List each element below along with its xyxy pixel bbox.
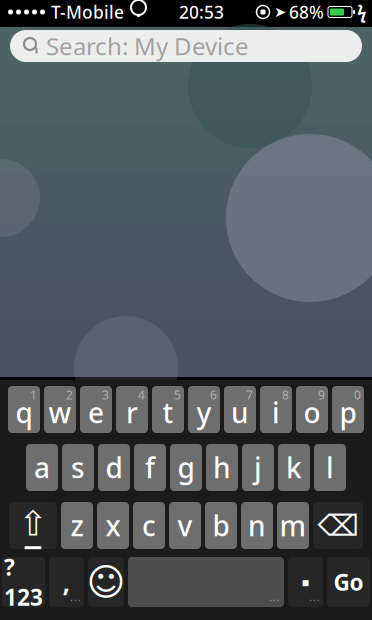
button[interactable]: x xyxy=(97,502,129,549)
staticText: ⋯ xyxy=(70,594,81,606)
staticText: , xyxy=(62,564,70,600)
staticText: a xyxy=(34,449,50,486)
button[interactable]: d xyxy=(98,444,130,491)
staticText: ▪ xyxy=(301,575,309,589)
button[interactable]: 3 xyxy=(80,386,112,433)
button[interactable]: Backspace xyxy=(313,502,363,549)
button[interactable]: Search: My Device xyxy=(10,30,362,62)
staticText: ⋯ xyxy=(309,594,320,606)
button[interactable]: j xyxy=(242,444,274,491)
button[interactable]: 2 xyxy=(44,386,76,433)
button[interactable]: v xyxy=(169,502,201,549)
staticText: k xyxy=(286,449,302,486)
staticText: o xyxy=(303,394,320,431)
button[interactable]: a xyxy=(26,444,58,491)
staticText: 5 xyxy=(174,387,181,403)
button[interactable]: m xyxy=(277,502,309,549)
button[interactable]: g xyxy=(170,444,202,491)
button[interactable]: Numbers and symbols xyxy=(2,557,45,607)
button[interactable]: 9 xyxy=(296,386,328,433)
staticText: ⌫ xyxy=(317,509,358,542)
button[interactable]: Comma xyxy=(49,557,84,607)
staticText: ?123 xyxy=(4,552,43,612)
staticText: ☺ xyxy=(86,561,125,603)
staticText: s xyxy=(71,449,85,486)
staticText: l xyxy=(326,449,334,486)
staticText: 1 xyxy=(30,387,37,403)
button[interactable]: 6 xyxy=(188,386,220,433)
staticText: 6 xyxy=(210,387,217,403)
staticText: Go xyxy=(333,567,363,597)
staticText: 7 xyxy=(246,387,253,403)
button[interactable]: 8 xyxy=(260,386,292,433)
button[interactable]: h xyxy=(206,444,238,491)
staticText: g xyxy=(177,449,194,486)
staticText: ϟ xyxy=(357,0,367,23)
staticText: 9 xyxy=(318,387,325,403)
staticText: c xyxy=(142,507,156,544)
staticText: 2 xyxy=(66,387,73,403)
button[interactable]: Emoji xyxy=(88,557,124,607)
staticText: v xyxy=(177,507,192,544)
staticText: 8 xyxy=(282,387,289,403)
button[interactable]: s xyxy=(62,444,94,491)
staticText: ⇧ xyxy=(18,504,47,543)
staticText: n xyxy=(248,507,266,544)
button[interactable]: l xyxy=(314,444,346,491)
staticText: ⋯ xyxy=(269,594,280,606)
staticText: i xyxy=(272,394,280,431)
button[interactable]: 7 xyxy=(224,386,256,433)
staticText: w xyxy=(48,394,71,431)
staticText: 3 xyxy=(102,387,109,403)
staticText: j xyxy=(254,449,262,486)
staticText: h xyxy=(213,449,231,486)
staticText: u xyxy=(231,394,249,431)
staticText: y xyxy=(196,394,211,431)
button[interactable]: Period xyxy=(288,557,323,607)
staticText: f xyxy=(145,449,155,486)
staticText: q xyxy=(15,394,32,431)
staticText: p xyxy=(339,394,356,431)
staticText: z xyxy=(70,507,83,544)
staticText: 4 xyxy=(138,387,145,403)
button[interactable]: n xyxy=(241,502,273,549)
staticText: d xyxy=(105,449,122,486)
button[interactable]: 5 xyxy=(152,386,184,433)
button[interactable]: b xyxy=(205,502,237,549)
staticText: 68% xyxy=(289,0,324,23)
button[interactable]: 1 xyxy=(8,386,40,433)
staticText: ➤ xyxy=(274,4,286,20)
button[interactable]: k xyxy=(278,444,310,491)
button[interactable]: 0 xyxy=(332,386,364,433)
staticText: Search: My Device xyxy=(46,30,249,62)
button[interactable]: Shift xyxy=(9,502,57,549)
staticText: 0 xyxy=(354,387,361,403)
staticText: r xyxy=(126,394,138,431)
button[interactable]: 4 xyxy=(116,386,148,433)
button[interactable]: Go xyxy=(327,557,370,607)
staticText: 20:53 xyxy=(179,0,224,23)
button[interactable]: f xyxy=(134,444,166,491)
staticText: e xyxy=(88,394,104,431)
staticText: b xyxy=(212,507,229,544)
staticText: T-Mobile xyxy=(51,0,124,23)
button[interactable]: z xyxy=(61,502,93,549)
staticText: t xyxy=(162,394,173,431)
button[interactable]: c xyxy=(133,502,165,549)
staticText: x xyxy=(105,507,120,544)
staticText: m xyxy=(279,507,306,544)
